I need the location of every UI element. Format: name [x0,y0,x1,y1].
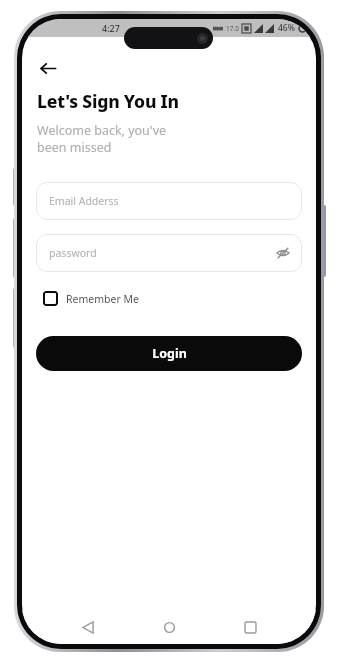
button[interactable]: Recents [235,612,265,642]
staticText: 46% [278,22,295,34]
staticText: 17.0 [226,24,239,33]
staticText: Welcome back, you've been missed [37,122,167,156]
staticText: Login [152,345,187,362]
button[interactable]: Login [36,336,302,371]
staticText: Email Adderss [49,194,119,208]
staticText: Let's Sign You In [37,89,179,113]
staticText: Remember Me [66,292,139,306]
button[interactable]: password [36,234,302,272]
button[interactable]: Toggle password visibility [273,243,293,263]
staticText: 4:27 [102,22,120,34]
button[interactable]: Remember Me [41,289,141,308]
staticText: password [49,246,97,260]
button[interactable]: Home [154,612,184,642]
button[interactable]: Email Adderss [36,182,302,220]
button[interactable]: Back [73,612,103,642]
button[interactable]: Back [31,51,65,85]
